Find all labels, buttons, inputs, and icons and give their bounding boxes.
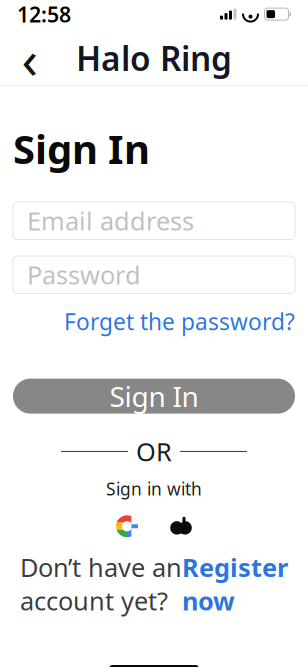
staticText: ‹ <box>21 23 38 93</box>
button[interactable]: Sign In <box>13 379 295 414</box>
button[interactable]: Sign in with Apple <box>154 510 208 542</box>
staticText: Sign in with <box>106 477 202 500</box>
staticText: Don’t have an account yet? <box>20 550 182 618</box>
staticText: Sign In <box>109 377 198 415</box>
staticText: 12:58 <box>17 0 71 28</box>
staticText: Forget the password? <box>64 306 295 337</box>
button[interactable]: Register now <box>182 550 288 618</box>
staticText: Password <box>27 258 141 292</box>
button[interactable]: Forget the password? <box>64 306 295 337</box>
staticText: Halo Ring <box>76 36 232 80</box>
button[interactable]: Sign in with Google <box>100 510 154 542</box>
staticText: Email address <box>27 204 194 238</box>
button[interactable]: Back <box>9 35 51 81</box>
staticText: Sign In <box>13 122 150 175</box>
staticText: OR <box>136 435 172 468</box>
staticText: Register now <box>182 550 288 618</box>
